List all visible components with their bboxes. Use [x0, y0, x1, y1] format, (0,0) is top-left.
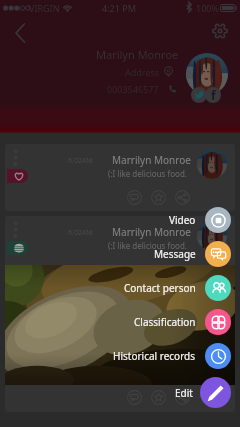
- button[interactable]: Settings: [209, 20, 231, 42]
- staticText: 4:21 PM: [102, 2, 136, 14]
- button[interactable]: Share: [173, 388, 191, 406]
- button[interactable]: Video: [0, 207, 231, 233]
- staticText: Marrilyn Monroe: [112, 153, 191, 167]
- button[interactable]: Message: [0, 241, 231, 267]
- staticText: 6.02AM: [68, 156, 93, 166]
- button[interactable]: Favorite: [149, 388, 167, 406]
- button[interactable]: Historical records: [0, 343, 231, 369]
- button[interactable]: [7, 169, 28, 183]
- staticText: 0003546577: [107, 83, 159, 95]
- staticText: Contact person: [124, 281, 196, 295]
- button[interactable]: Twitter: [191, 87, 207, 103]
- button[interactable]: Comment: [125, 188, 143, 206]
- button[interactable]: Comment: [125, 388, 143, 406]
- button[interactable]: 6.02AM: [5, 216, 235, 412]
- staticText: Video: [169, 213, 196, 227]
- button[interactable]: Edit: [0, 377, 231, 408]
- staticText: Marrilyn Monroe: [112, 225, 191, 239]
- button[interactable]: Back: [8, 21, 32, 45]
- button[interactable]: Classification: [0, 309, 231, 335]
- staticText: Historical records: [113, 349, 196, 363]
- button[interactable]: Contact person: [0, 275, 231, 301]
- staticText: 100%: [196, 2, 219, 14]
- button[interactable]: Favorite: [149, 188, 167, 206]
- staticText: (:I like delicious food.: [108, 168, 187, 179]
- staticText: Marilyn Monroe: [96, 47, 179, 62]
- staticText: Message: [154, 247, 196, 261]
- staticText: Address: [125, 66, 160, 78]
- button[interactable]: [7, 241, 28, 255]
- staticText: VIRGIN: [29, 2, 60, 14]
- button[interactable]: Facebook: [205, 87, 221, 103]
- staticText: Classification: [134, 315, 196, 329]
- staticText: 6.02AM: [68, 228, 93, 238]
- staticText: (:I like delicious food.: [108, 240, 187, 251]
- staticText: f: [211, 87, 216, 103]
- button[interactable]: 6.02AM: [5, 144, 235, 211]
- button[interactable]: Share: [173, 188, 191, 206]
- staticText: Edit: [175, 386, 193, 400]
